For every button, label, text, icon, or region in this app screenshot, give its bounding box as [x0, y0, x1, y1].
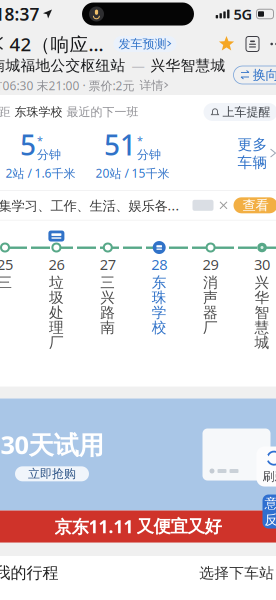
button[interactable]: 站牌 — [243, 34, 261, 54]
staticText: 29 — [203, 254, 219, 274]
button[interactable]: 发车预测 — [113, 36, 176, 52]
staticText: 最近的下一班 — [62, 105, 138, 119]
staticText: 城 — [254, 333, 269, 351]
staticText: 详情 — [139, 78, 163, 93]
staticText: 处 — [49, 303, 64, 321]
staticText: 学 — [152, 303, 167, 321]
staticText: 20站 / 15千米 — [95, 165, 169, 181]
staticText: 又便宜又好 — [136, 516, 221, 537]
staticText: 2站 / 1.6千米 — [5, 165, 75, 181]
staticText: 兴 — [100, 288, 115, 306]
staticText: 集学习、工作、生活、娱乐各种… — [0, 196, 184, 214]
staticText: 上车提醒 — [222, 105, 270, 119]
staticText: 器 — [203, 303, 218, 321]
staticText: 意见 — [264, 495, 276, 511]
staticText: 南城福地公交枢纽站 — [0, 56, 125, 74]
staticText: 消 — [203, 273, 218, 291]
staticText: 换向 — [252, 67, 276, 83]
staticText: 立即抢购 — [28, 466, 76, 481]
staticText: 慧 — [254, 318, 269, 336]
staticText: 5 — [20, 126, 36, 163]
staticText: 发车预测 — [118, 37, 166, 51]
staticText: 路 — [100, 303, 115, 321]
staticText: 分钟 — [37, 147, 61, 162]
staticText: 厂 — [203, 318, 218, 336]
staticText: 首06:30 末21:00 · 票价:2元 — [0, 77, 134, 93]
button[interactable]: 选择下车站 — [199, 564, 276, 582]
staticText: 27 — [100, 254, 116, 274]
staticText: * — [137, 133, 143, 147]
staticText: 东 — [152, 273, 167, 291]
staticText: 18:37 — [0, 2, 39, 25]
staticText: 声 — [203, 288, 218, 306]
button[interactable]: 详情 — [134, 78, 168, 93]
button[interactable]: 查看 — [233, 197, 276, 213]
staticText: 反馈 — [264, 511, 276, 528]
staticText: 校 — [152, 318, 167, 336]
staticText: 5G — [233, 4, 252, 24]
staticText: 26 — [48, 254, 64, 274]
staticText: 28 — [151, 254, 167, 274]
button[interactable]: 意见 — [262, 494, 276, 528]
button[interactable]: 更多 — [237, 135, 276, 171]
staticText: 东珠学校 — [14, 105, 62, 119]
staticText: 厂 — [49, 333, 64, 351]
button[interactable]: 30天试用 — [0, 398, 276, 542]
staticText: 圾 — [49, 288, 64, 306]
button[interactable]: 换向 — [233, 66, 276, 84]
staticText: 25 — [0, 254, 13, 274]
staticText: 30 — [254, 254, 270, 274]
staticText: 30天试用 — [0, 428, 103, 461]
button[interactable]: 上车提醒 — [203, 103, 276, 121]
staticText: 兴华智慧城 — [150, 56, 225, 74]
staticText: 42（响应式… — [9, 32, 113, 56]
staticText: 智 — [254, 303, 269, 321]
staticText: 距 — [0, 105, 14, 119]
staticText: 垃 — [49, 273, 64, 291]
staticText: 华 — [254, 288, 269, 306]
staticText: 理 — [49, 318, 64, 336]
staticText: 车辆 — [237, 154, 267, 172]
staticText: 51 — [104, 126, 136, 163]
staticText: — — [125, 57, 150, 74]
staticText: 刷新 — [262, 469, 276, 484]
button[interactable]: 刷新 — [256, 446, 276, 486]
staticText: 分钟 — [137, 147, 161, 162]
staticText: 查看 — [242, 197, 268, 213]
staticText: 选择下车站 — [199, 564, 274, 582]
staticText: * — [37, 133, 43, 147]
staticText: 京东11.11 — [54, 515, 133, 538]
button[interactable]: 关闭 — [213, 201, 233, 209]
staticText: 三 — [100, 273, 115, 291]
staticText: 更多 — [237, 135, 267, 153]
button[interactable]: 返回 — [0, 33, 9, 55]
staticText: 我的行程 — [0, 563, 58, 583]
button[interactable]: 收藏 — [217, 34, 235, 54]
staticText: 珠 — [152, 288, 167, 306]
button[interactable]: 更多 — [266, 34, 276, 54]
staticText: 兴 — [254, 273, 269, 291]
staticText: 南 — [100, 318, 115, 336]
staticText: 三 — [0, 273, 12, 291]
